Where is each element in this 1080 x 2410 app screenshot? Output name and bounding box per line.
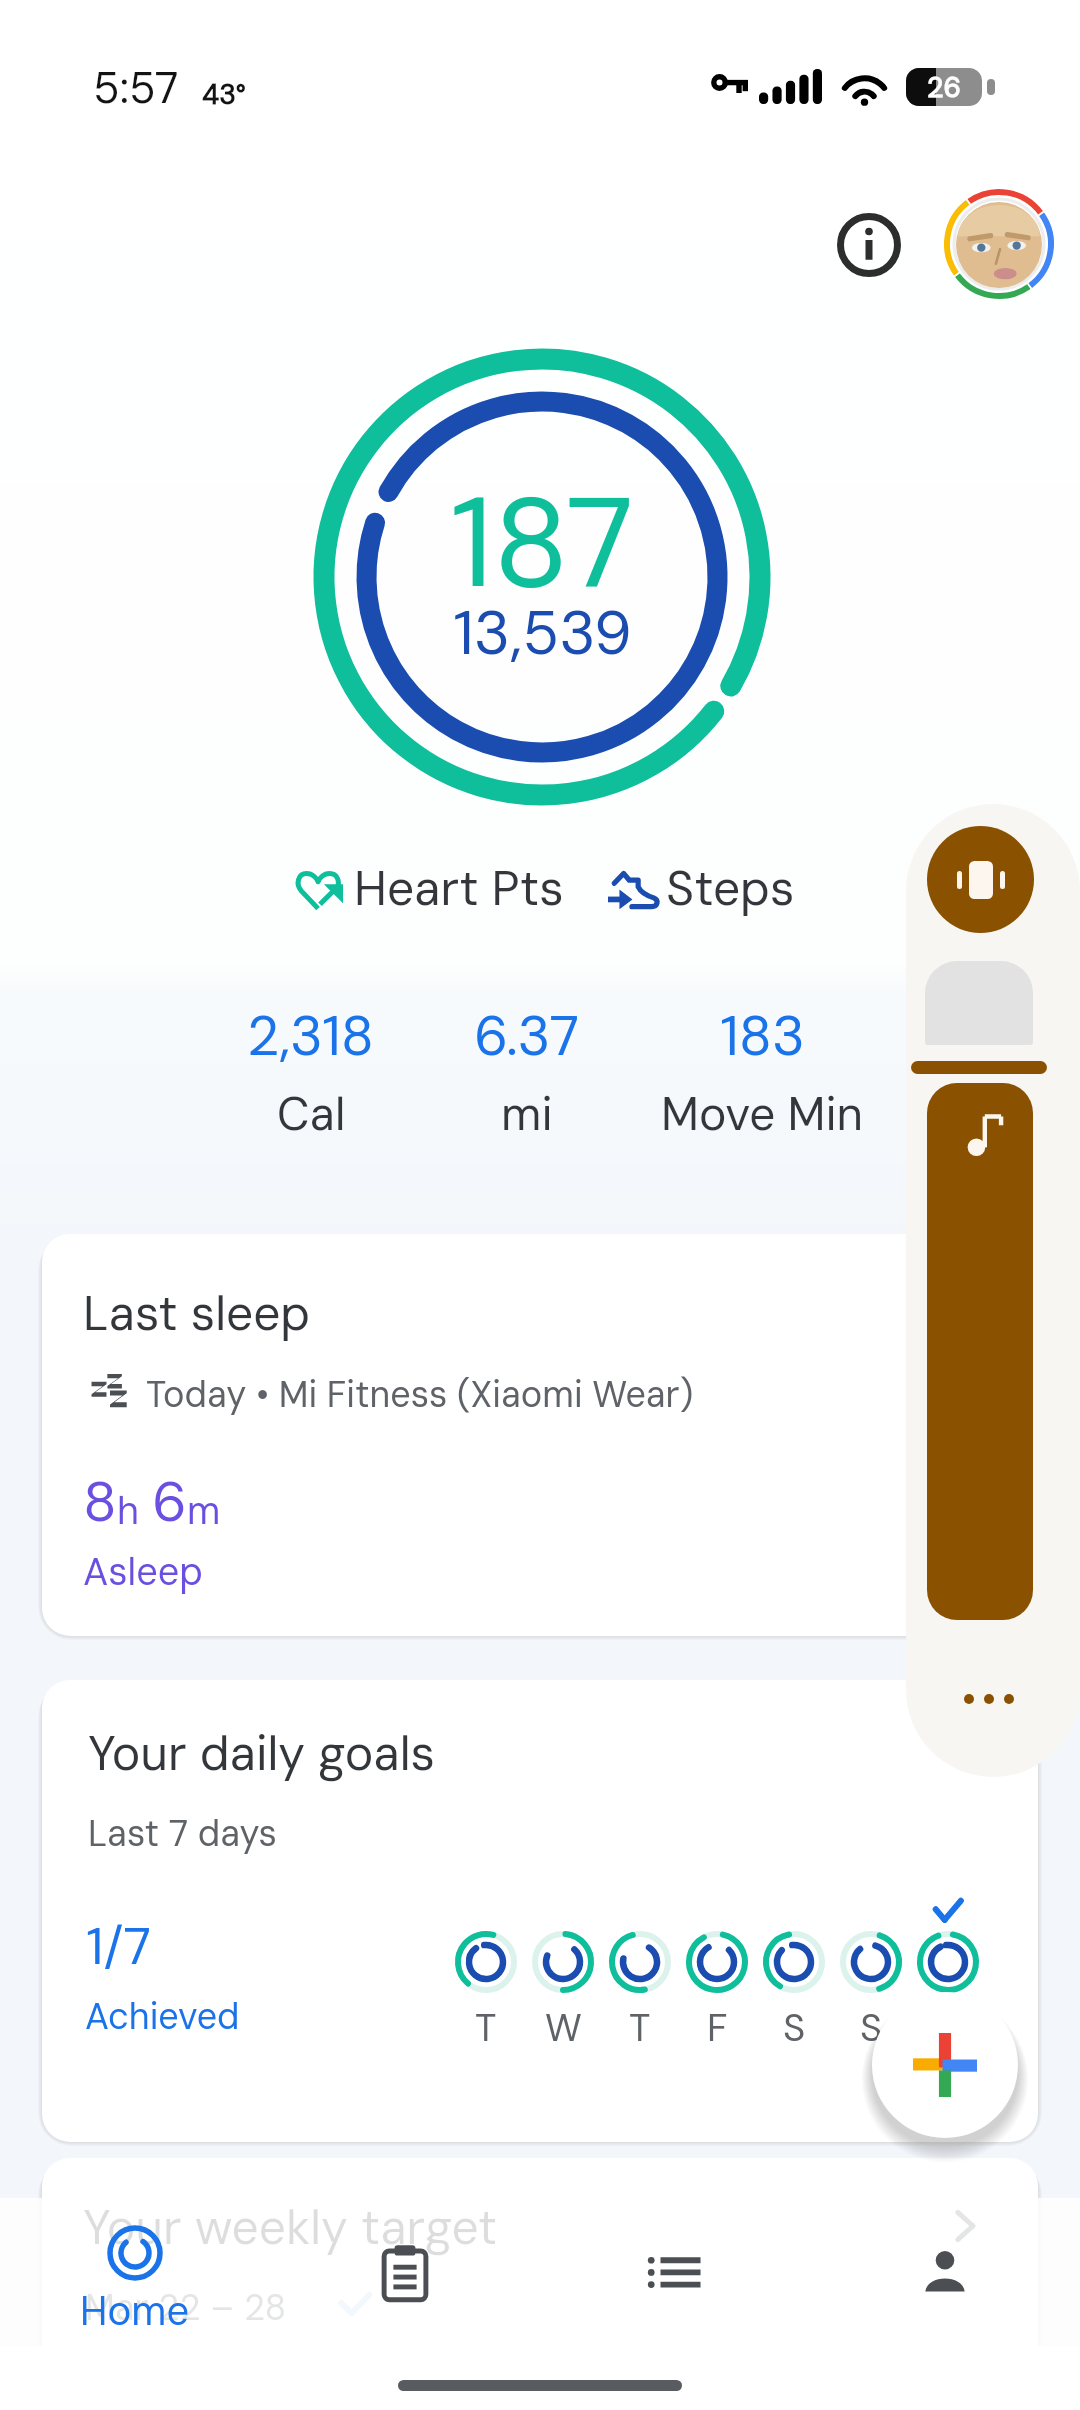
staticText: Cal <box>277 1084 346 1144</box>
staticText: h <box>117 1486 140 1535</box>
staticText: Asleep <box>83 1547 203 1596</box>
staticText: Home <box>80 2285 190 2337</box>
staticText: F <box>707 2003 728 2052</box>
staticText: Move Min <box>661 1084 864 1144</box>
button[interactable]: Add <box>872 1992 1018 2138</box>
staticText: Last sleep <box>83 1282 311 1344</box>
staticText: Today • Mi Fitness (Xiaomi Wear) <box>146 1371 694 1418</box>
button[interactable]: Journal <box>305 2244 505 2324</box>
staticText: S <box>783 2003 806 2052</box>
staticText: 13,539 <box>453 593 632 672</box>
button[interactable]: Browse <box>575 2244 775 2324</box>
staticText: T <box>629 2003 651 2052</box>
staticText: 6 <box>152 1465 187 1538</box>
button[interactable]: Profile <box>940 185 1057 302</box>
staticText: mi <box>501 1084 553 1144</box>
staticText: M <box>932 2003 964 2052</box>
staticText: m <box>187 1486 221 1535</box>
button[interactable]: T <box>448 1926 524 2052</box>
staticText: Heart Pts <box>354 857 564 919</box>
staticText: 43° <box>202 76 246 112</box>
button[interactable]: 183 <box>612 1000 912 1144</box>
button[interactable]: F <box>679 1926 755 2052</box>
button[interactable]: S <box>756 1926 832 2052</box>
staticText: Steps <box>666 857 795 919</box>
staticText: 6.37 <box>474 1000 580 1072</box>
staticText: 2,318 <box>247 1000 375 1072</box>
button[interactable]: W <box>525 1926 601 2052</box>
staticText: W <box>545 2003 582 2052</box>
staticText: Your weekly target <box>83 2196 498 2258</box>
button[interactable]: Heart Pts <box>296 853 564 923</box>
button[interactable]: Last sleep <box>42 1234 1038 1636</box>
button[interactable]: More <box>958 1688 1020 1710</box>
button[interactable]: M <box>910 1926 986 2052</box>
staticText: 26 <box>927 69 961 105</box>
button[interactable]: Profile <box>845 2244 1045 2324</box>
staticText: 5:57 <box>93 59 179 116</box>
staticText: 8 <box>83 1465 117 1538</box>
staticText: 183 <box>720 1000 805 1072</box>
staticText: 1/7 <box>86 1913 151 1979</box>
button[interactable]: Your weekly target <box>42 2158 1038 2410</box>
button[interactable]: Steps <box>608 853 795 923</box>
staticText: Last 7 days <box>88 1810 277 1857</box>
staticText: S <box>860 2003 883 2052</box>
staticText: 187 <box>450 461 634 625</box>
button[interactable]: Your daily goals <box>42 1680 1038 2142</box>
button[interactable]: Home <box>35 2225 235 2337</box>
button[interactable]: 2,318 <box>161 1000 461 1144</box>
button[interactable]: Volume <box>925 961 1033 1045</box>
staticText: Your daily goals <box>88 1722 436 1784</box>
button[interactable]: Media volume <box>927 1083 1033 1620</box>
button[interactable]: T <box>602 1926 678 2052</box>
button[interactable]: S <box>833 1926 909 2052</box>
button[interactable]: 6.37 <box>377 1000 677 1144</box>
button[interactable]: Info <box>812 188 926 302</box>
staticText: Achieved <box>85 1993 240 2040</box>
button[interactable]: Ring mode <box>927 826 1034 933</box>
staticText: Mar 22 – 28 <box>85 2284 287 2331</box>
staticText: T <box>475 2003 497 2052</box>
